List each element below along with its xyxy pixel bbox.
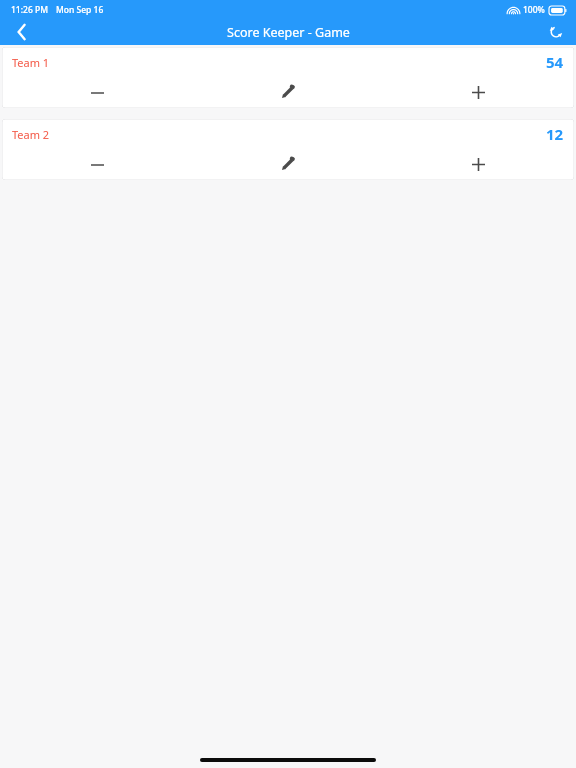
staticText: Team 2	[12, 127, 50, 142]
button[interactable]: Increase score for Team 2	[383, 149, 574, 180]
staticText: Mon Sep 16	[56, 4, 104, 16]
button[interactable]: Edit Team 2	[192, 149, 383, 180]
button[interactable]: Edit Team 1	[192, 77, 383, 108]
staticText: 54	[546, 52, 564, 72]
staticText: Team 1	[12, 55, 50, 70]
button[interactable]: Decrease score for Team 2	[2, 149, 192, 180]
button[interactable]: Back	[0, 19, 44, 45]
button[interactable]: Increase score for Team 1	[383, 77, 574, 108]
staticText: 12	[546, 124, 564, 144]
staticText: Score Keeper - Game	[227, 24, 350, 41]
button[interactable]: Decrease score for Team 1	[2, 77, 192, 108]
button[interactable]: Reset scores	[536, 19, 576, 45]
staticText: 11:26 PM	[11, 4, 48, 16]
staticText: 100%	[523, 4, 545, 16]
